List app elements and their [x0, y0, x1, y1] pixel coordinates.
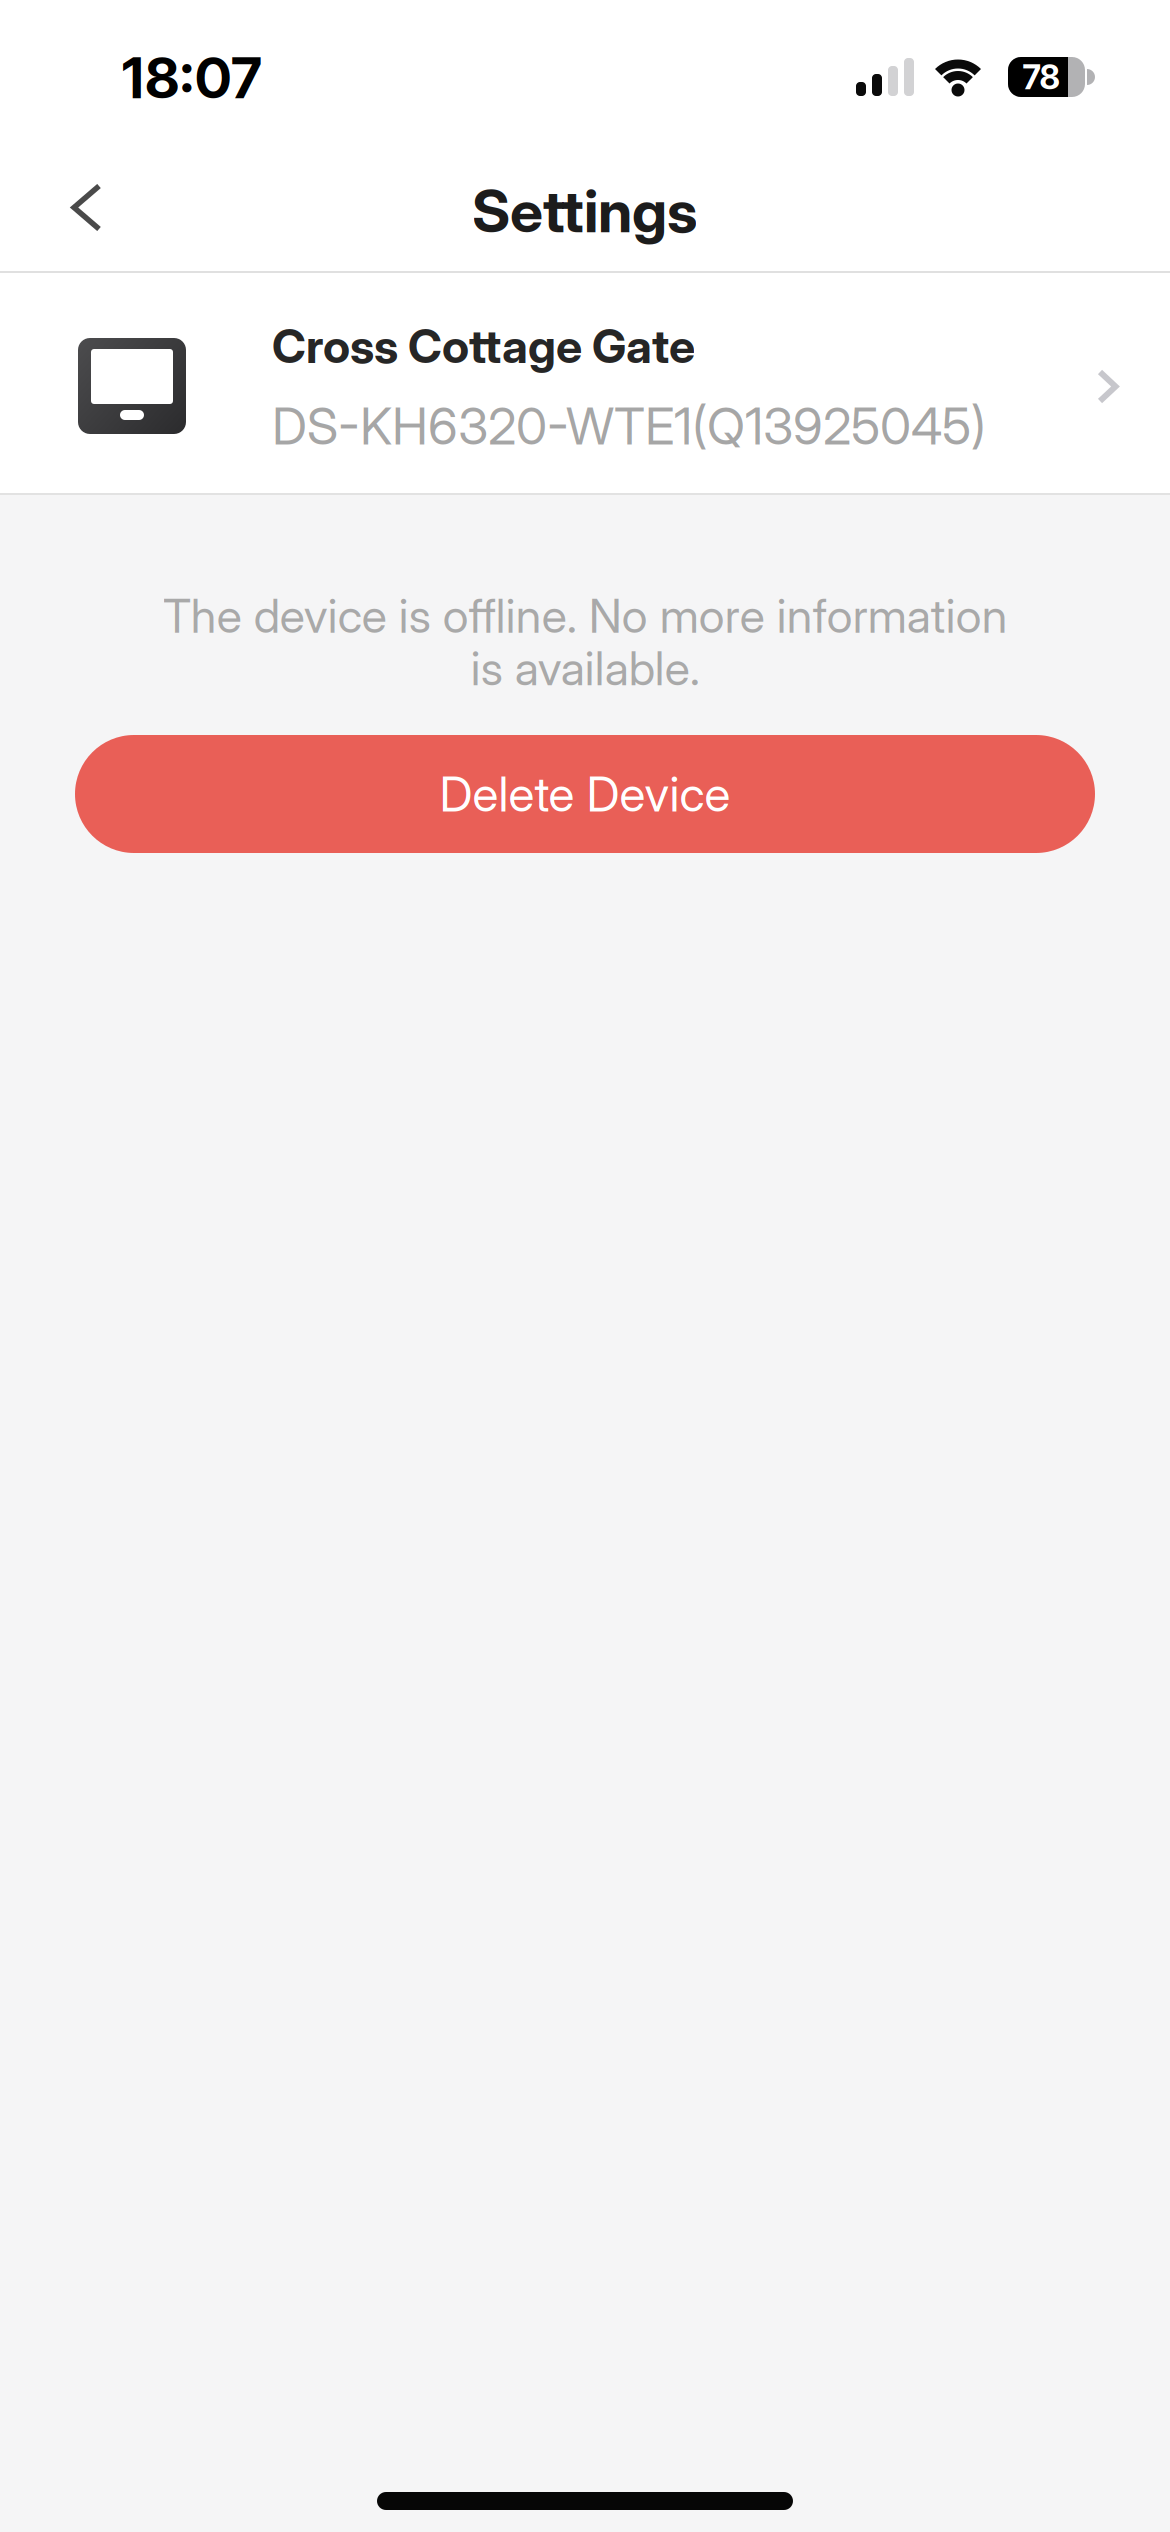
button[interactable]: Delete Device: [75, 735, 1095, 853]
staticText: Cross Cottage Gate: [272, 318, 695, 374]
staticText: Delete Device: [439, 765, 730, 823]
staticText: The device is offline. No more informati…: [162, 587, 1007, 696]
staticText: DS-KH6320-WTE1(Q13925045): [272, 395, 986, 457]
staticText: Settings: [472, 175, 698, 246]
button[interactable]: Back: [32, 171, 142, 244]
staticText: 78: [1022, 57, 1059, 97]
button[interactable]: Cross Cottage Gate: [0, 273, 1170, 493]
staticText: 18:07: [122, 44, 262, 112]
